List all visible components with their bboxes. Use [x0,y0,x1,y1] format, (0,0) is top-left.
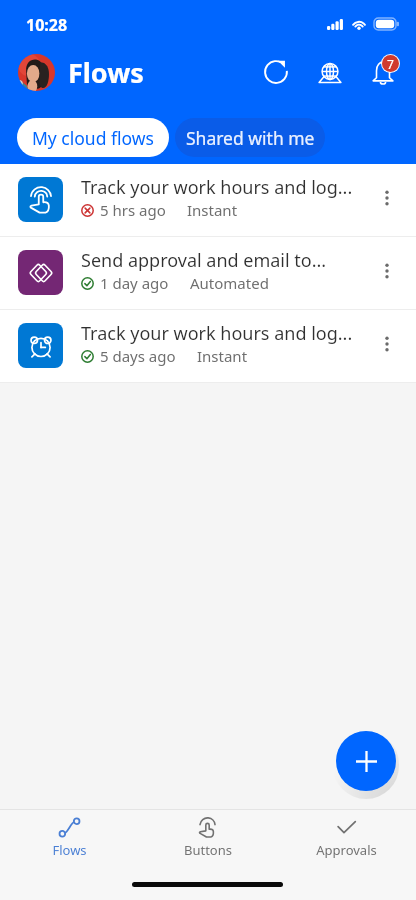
button[interactable]: Track your work hours and log... [0,164,416,236]
staticText: Buttons [184,841,232,859]
staticText: Automated [190,273,269,293]
button[interactable]: Environment [309,51,351,93]
staticText: 5 days ago [100,346,176,366]
button[interactable]: More options [367,178,407,218]
staticText: 5 hrs ago [100,200,166,220]
staticText: Track your work hours and log... [81,175,353,200]
staticText: 7 [387,56,394,72]
button[interactable]: My cloud flows [17,118,169,157]
button[interactable]: More options [367,251,407,291]
button[interactable]: Account [18,54,144,91]
button[interactable]: Approvals [277,817,416,900]
staticText: Instant [197,346,248,366]
button[interactable]: Buttons [138,817,277,900]
button[interactable]: Refresh [255,51,297,93]
button[interactable]: More options [367,324,407,364]
button[interactable]: Send approval and email to... [0,237,416,309]
button[interactable]: Track your work hours and log... [0,310,416,382]
button[interactable]: Notifications [360,50,404,94]
button[interactable]: Shared with me [175,118,325,157]
button[interactable]: Create new flow [336,731,396,791]
staticText: 10:28 [26,14,68,36]
staticText: Shared with me [186,126,315,150]
staticText: Flows [68,54,144,91]
button[interactable]: Flows [0,817,138,900]
staticText: Flows [52,841,87,859]
staticText: Send approval and email to... [81,248,327,273]
staticText: 1 day ago [100,273,169,293]
staticText: Approvals [316,841,377,859]
staticText: My cloud flows [32,126,154,150]
staticText: Instant [187,200,238,220]
staticText: Track your work hours and log... [81,321,353,346]
